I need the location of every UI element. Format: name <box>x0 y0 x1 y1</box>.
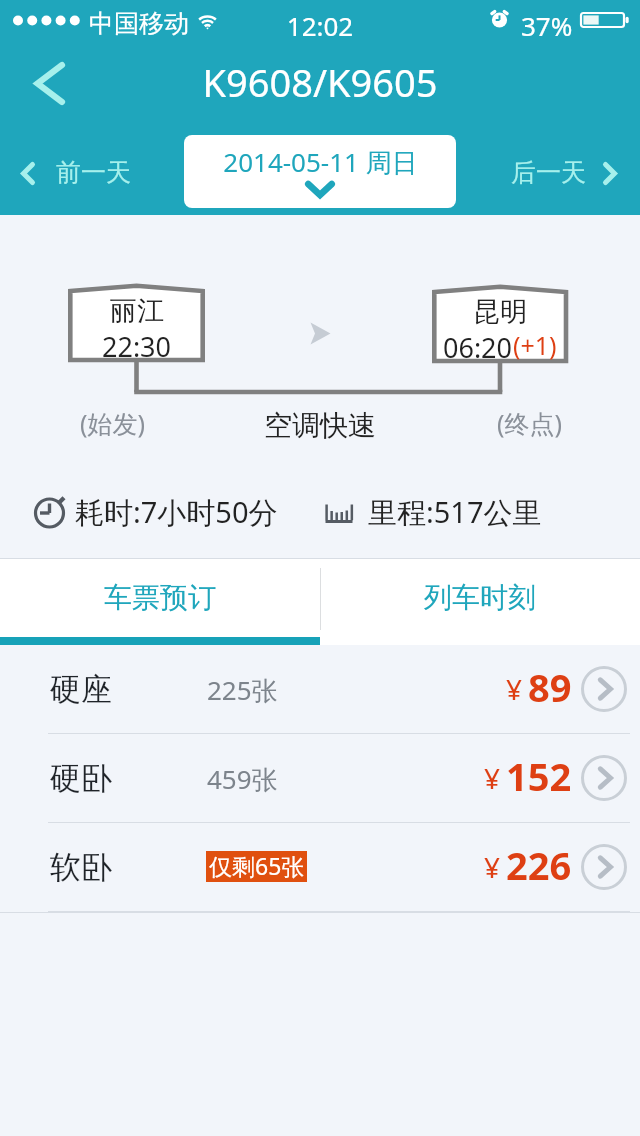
staticText: 仅剩65张 <box>209 850 305 881</box>
button[interactable]: 车票预订 <box>0 559 320 645</box>
staticText: 89 <box>528 661 572 713</box>
staticText: 耗时:7小时50分 <box>75 492 278 532</box>
button[interactable]: 前一天 <box>8 147 145 199</box>
staticText: 37% <box>521 8 573 43</box>
button[interactable]: 2014-05-11 周日 <box>184 135 456 208</box>
staticText: (终点) <box>497 406 563 440</box>
staticText: 硬卧 <box>50 759 112 798</box>
staticText: 459张 <box>207 761 278 797</box>
button[interactable]: Back <box>8 48 88 120</box>
staticText: (+1) <box>513 328 557 360</box>
staticText: ¥ <box>484 759 501 797</box>
staticText: 空调快速 <box>264 408 376 443</box>
staticText: ¥ <box>506 670 523 708</box>
staticText: 12:02 <box>0 8 640 43</box>
staticText: 226 <box>506 839 572 891</box>
staticText: 06:20 <box>443 329 513 361</box>
staticText: 硬座 <box>50 670 112 709</box>
staticText: 软卧 <box>50 848 112 887</box>
staticText: 中国移动 <box>89 8 189 39</box>
staticText: 车票预订 <box>104 580 216 615</box>
staticText: 丽江 <box>110 294 164 328</box>
staticText: 昆明 <box>473 295 527 329</box>
staticText: 225张 <box>207 672 278 708</box>
button[interactable]: 软卧 <box>0 823 640 912</box>
staticText: ¥ <box>484 848 501 886</box>
staticText: 2014-05-11 周日 <box>223 144 418 180</box>
button[interactable]: 硬卧 <box>0 734 640 823</box>
button[interactable]: 列车时刻 <box>320 559 640 645</box>
staticText: 前一天 <box>56 157 131 188</box>
staticText: K9608/K9605 <box>0 56 640 108</box>
staticText: 里程:517公里 <box>368 492 542 532</box>
staticText: 列车时刻 <box>424 580 536 615</box>
button[interactable]: 后一天 <box>497 147 630 199</box>
staticText: 22:30 <box>102 328 172 360</box>
staticText: 后一天 <box>511 157 586 188</box>
button[interactable]: 硬座 <box>0 645 640 734</box>
staticText: 152 <box>506 750 572 802</box>
staticText: (始发) <box>80 406 146 440</box>
